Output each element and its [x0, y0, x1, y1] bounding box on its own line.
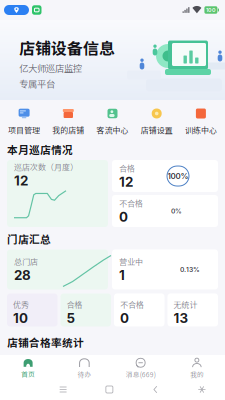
staticText: 专属平台: [19, 77, 55, 90]
staticText: 店铺设备信息: [19, 36, 115, 59]
staticText: 首页: [21, 369, 35, 379]
staticText: 营业中: [119, 256, 143, 267]
button[interactable]: 消息(669): [112, 358, 169, 379]
staticText: 我的店铺: [52, 124, 84, 136]
button[interactable]: 店铺设置: [135, 108, 179, 136]
staticText: 无统计: [173, 298, 197, 310]
staticText: 100%: [167, 171, 188, 181]
staticText: 优秀: [13, 298, 29, 310]
staticText: 我的: [190, 369, 204, 379]
staticText: 巡店次数（月度）: [14, 161, 78, 173]
staticText: 不合格: [120, 298, 144, 310]
button[interactable]: Assistant: [179, 386, 225, 393]
staticText: 训练中心: [185, 124, 217, 136]
staticText: 待办: [77, 369, 91, 379]
staticText: 0.13%: [180, 265, 200, 273]
button[interactable]: 我的: [169, 358, 225, 379]
button[interactable]: 项目管理: [2, 108, 46, 136]
staticText: 1: [119, 267, 125, 283]
button[interactable]: Recent apps: [40, 387, 86, 392]
staticText: 28: [14, 267, 31, 283]
button[interactable]: Home: [86, 386, 132, 393]
staticText: 0%: [171, 207, 182, 215]
staticText: 10: [13, 310, 28, 326]
staticText: 5: [66, 310, 75, 326]
button[interactable]: 我的店铺: [46, 108, 90, 136]
button[interactable]: 训练中心: [179, 108, 223, 136]
staticText: 客流中心: [96, 124, 128, 136]
staticText: 合格: [119, 162, 135, 174]
staticText: 12: [119, 174, 133, 190]
staticText: 店铺设置: [141, 124, 173, 136]
staticText: 消息(669): [126, 369, 156, 379]
staticText: 13: [173, 310, 188, 326]
staticText: 门店汇总: [7, 231, 51, 246]
button[interactable]: 首页: [0, 358, 56, 379]
staticText: 店铺合格率统计: [7, 334, 84, 350]
staticText: 12: [14, 173, 28, 189]
staticText: 项目管理: [8, 124, 40, 136]
staticText: 0: [119, 209, 128, 225]
button[interactable]: Back: [132, 386, 179, 393]
staticText: 0: [120, 310, 129, 326]
staticText: 总门店: [14, 255, 38, 267]
staticText: 不合格: [119, 197, 143, 209]
button[interactable]: 客流中心: [90, 108, 135, 136]
staticText: 亿大师巡店监控: [19, 61, 82, 75]
staticText: 本月巡店情况: [7, 142, 73, 157]
staticText: 100: [206, 7, 216, 13]
button[interactable]: 待办: [56, 358, 112, 379]
staticText: 合格: [66, 298, 82, 310]
